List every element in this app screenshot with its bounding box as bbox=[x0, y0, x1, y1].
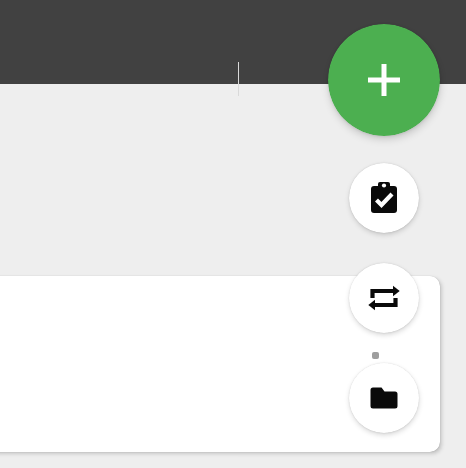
button[interactable]: Repeat bbox=[349, 263, 419, 333]
button[interactable]: Add bbox=[328, 24, 440, 136]
button[interactable]: Folder bbox=[349, 363, 419, 433]
button[interactable]: Tasks bbox=[349, 163, 419, 233]
